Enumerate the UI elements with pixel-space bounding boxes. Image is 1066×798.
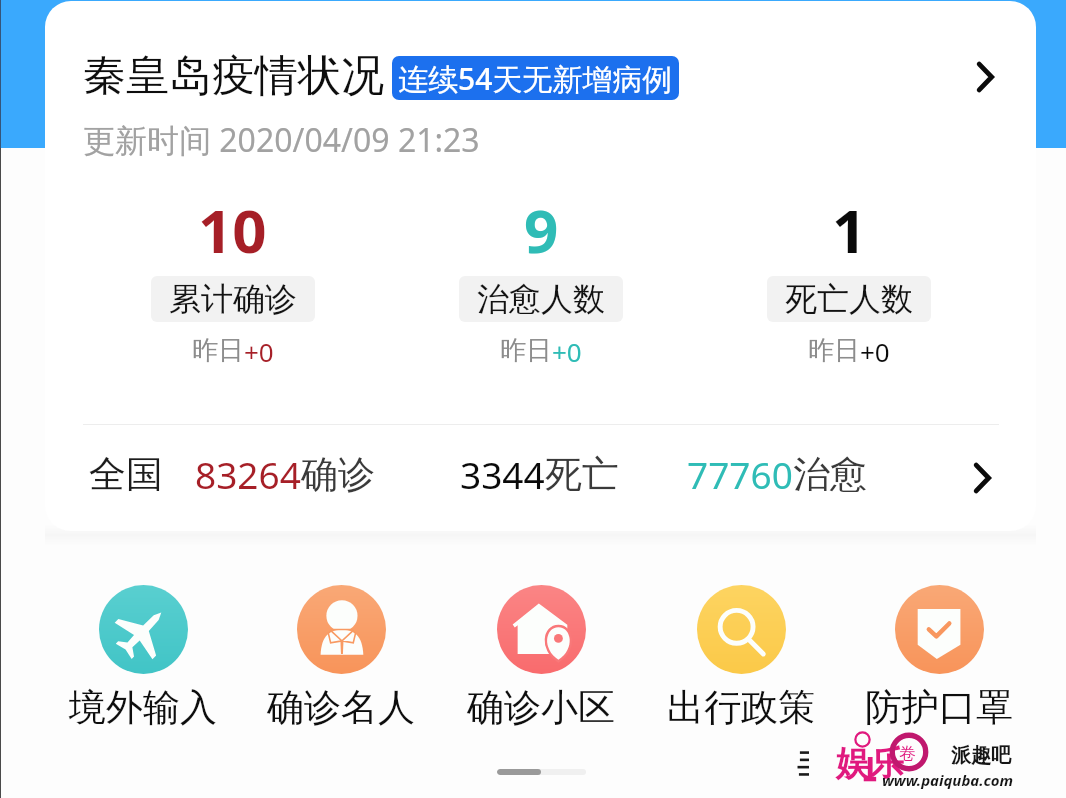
staticText: 更新时间 2020/04/09 21:23 — [83, 118, 480, 162]
staticText: 境外输入 — [69, 684, 217, 731]
staticText: 1 — [832, 189, 867, 271]
staticText: +0 — [860, 334, 890, 369]
staticText: 77760 — [687, 449, 793, 499]
button[interactable]: 秦皇岛疫情状况 — [45, 1, 1036, 161]
staticText: 卷 — [899, 743, 916, 764]
staticText: 派趣吧 — [951, 743, 1011, 768]
button[interactable]: 10 — [78, 189, 387, 369]
button[interactable]: Travel policy — [651, 585, 831, 731]
staticText: 出行政策 — [667, 684, 815, 731]
button[interactable]: 9 — [387, 189, 695, 369]
staticText: 治愈人数 — [477, 279, 605, 319]
button[interactable]: Overseas input — [53, 585, 233, 731]
other: More details — [960, 53, 1008, 101]
staticText: 娱乐 — [836, 742, 904, 785]
staticText: 昨日 — [500, 334, 552, 367]
staticText: 昨日 — [808, 334, 860, 367]
button[interactable]: 全国 — [45, 420, 1036, 531]
other: Protective masks — [895, 585, 984, 674]
staticText: 3344 — [460, 449, 545, 499]
button[interactable]: Confirmed communities — [451, 585, 631, 731]
staticText: +0 — [244, 334, 274, 369]
other: Confirmed communities — [497, 585, 586, 674]
staticText: 死亡 — [545, 451, 619, 498]
staticText: 确诊名人 — [267, 684, 415, 731]
other: Confirmed celebrities — [297, 585, 386, 674]
other: Overseas input — [99, 585, 188, 674]
other: National details — [957, 454, 1005, 502]
staticText: 死亡人数 — [785, 279, 913, 319]
staticText: 治愈 — [793, 451, 867, 498]
staticText: 确诊 — [301, 451, 375, 498]
button[interactable]: Confirmed celebrities — [251, 585, 431, 731]
staticText: 昨日 — [192, 334, 244, 367]
staticText: 连续54天无新增病例 — [398, 58, 673, 99]
staticText: 秦皇岛疫情状况 — [83, 49, 384, 103]
staticText: 累计确诊 — [169, 279, 297, 319]
staticText: 83264 — [195, 449, 301, 499]
staticText: 9 — [524, 189, 559, 271]
staticText: 防护口罩 — [865, 684, 1013, 731]
button[interactable]: 1 — [695, 189, 1003, 369]
staticText: www.paiquba.com — [882, 770, 1014, 790]
staticText: 确诊小区 — [467, 684, 615, 731]
staticText: +0 — [552, 334, 582, 369]
staticText: 全国 — [89, 451, 163, 498]
other: Travel policy — [697, 585, 786, 674]
button[interactable]: Protective masks — [849, 585, 1029, 731]
staticText: 10 — [198, 189, 267, 271]
